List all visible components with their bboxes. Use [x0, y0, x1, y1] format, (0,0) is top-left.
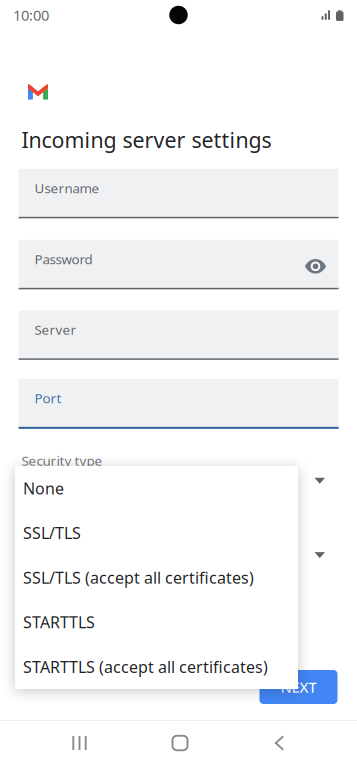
button[interactable]: Back	[245, 721, 313, 765]
staticText: Server	[34, 321, 76, 338]
button[interactable]: Show password	[298, 249, 332, 283]
staticText: STARTTLS (accept all certificates)	[23, 656, 268, 677]
button[interactable]: STARTTLS (accept all certificates)	[15, 644, 298, 689]
staticText: Username	[34, 179, 99, 197]
staticText: Port	[34, 389, 61, 407]
staticText: 10:00	[13, 5, 49, 25]
button[interactable]: Authentication type	[18, 526, 338, 578]
staticText: STARTTLS	[23, 611, 95, 633]
button[interactable]: SSL/TLS (accept all certificates)	[15, 555, 298, 600]
staticText: Incoming server settings	[21, 125, 271, 154]
button[interactable]: None	[15, 466, 298, 511]
staticText: Authentication type	[21, 526, 143, 544]
staticText: NEXT	[280, 677, 316, 697]
button[interactable]: SSL/TLS	[15, 511, 298, 555]
staticText: SSL/TLS (accept all certificates)	[23, 567, 254, 588]
button[interactable]: NEXT	[259, 670, 337, 704]
staticText: None	[23, 478, 64, 499]
button[interactable]: Home	[146, 721, 214, 765]
button[interactable]: Security type	[18, 452, 338, 504]
staticText: SSL/TLS	[23, 522, 81, 543]
staticText: Password	[34, 250, 92, 268]
staticText: Security type	[21, 452, 102, 469]
button[interactable]: STARTTLS	[15, 600, 298, 644]
button[interactable]: Recent apps	[45, 721, 113, 765]
